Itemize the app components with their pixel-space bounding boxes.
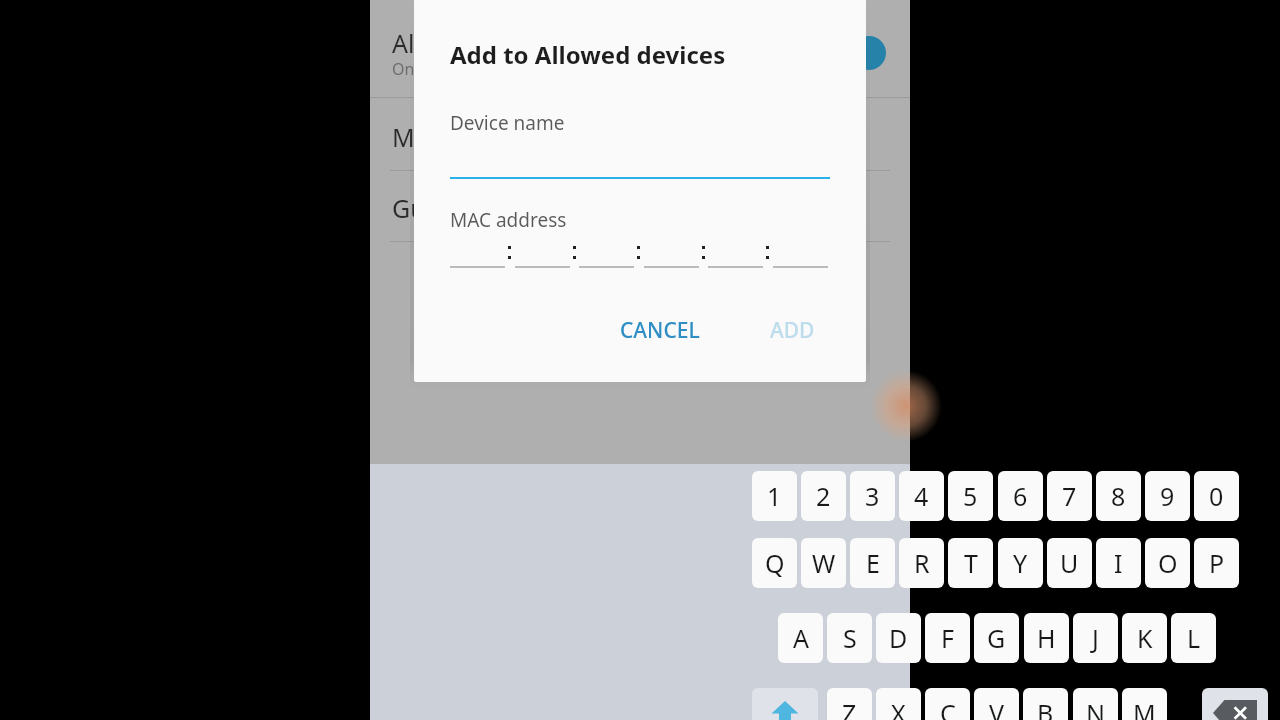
staticText: MAC filter [392,120,508,154]
button[interactable]: Y [998,538,1043,588]
button[interactable]: 4 [899,471,944,521]
staticText: B [1037,696,1054,720]
button[interactable]: Shift [752,688,818,720]
button[interactable]: 2 [801,471,846,521]
button[interactable]: X [876,688,921,720]
button[interactable]: Backspace [1202,688,1268,720]
staticText: A [793,621,809,655]
button[interactable]: O [1145,538,1190,588]
button[interactable]: 5 [948,471,993,521]
button[interactable]: 1 [752,471,797,521]
button[interactable]: H [1024,613,1069,663]
staticText: D [889,621,908,655]
staticText: 0 [1209,479,1224,513]
button[interactable]: 6 [998,471,1043,521]
button[interactable]: Q [752,538,797,588]
staticText: CANCEL [620,316,700,345]
staticText: Q [765,546,785,580]
button[interactable]: ADD [754,302,831,358]
staticText: 1 [767,479,782,513]
button[interactable]: MAC filter [370,98,910,170]
staticText: F [941,621,954,655]
staticText: U [1060,546,1079,580]
staticText: Add to Allowed devices [450,38,726,71]
button[interactable]: Toggle allowed devices [852,36,886,70]
staticText: P [1209,546,1225,580]
staticText: Allowed devices [392,26,578,60]
button[interactable]: G [974,613,1019,663]
staticText: 2 [816,479,831,513]
staticText: 6 [1013,479,1028,513]
button[interactable]: N [1073,688,1118,720]
button[interactable]: 7 [1047,471,1092,521]
staticText: N [1086,696,1106,720]
staticText: G [987,621,1006,655]
button[interactable]: U [1047,538,1092,588]
staticText: E [866,546,880,580]
button[interactable]: E [850,538,895,588]
staticText: ADD [770,316,815,345]
staticText: T [964,546,978,580]
button[interactable]: M [1122,688,1167,720]
button[interactable]: 8 [1096,471,1141,521]
staticText: MAC address [450,207,567,233]
staticText: I [1114,546,1123,580]
button[interactable]: I [1096,538,1141,588]
button[interactable]: W [801,538,846,588]
staticText: R [914,546,930,580]
button[interactable]: A [778,613,823,663]
button[interactable]: L [1171,613,1216,663]
button[interactable]: CANCEL [604,302,716,358]
staticText: L [1187,621,1201,655]
staticText: Only allow [392,58,471,80]
button[interactable]: 3 [850,471,895,521]
button[interactable]: Allowed devices [370,0,910,97]
button[interactable]: S [827,613,872,663]
button[interactable]: 9 [1145,471,1190,521]
button[interactable]: F [925,613,970,663]
button[interactable]: K [1122,613,1167,663]
staticText: Guest network [392,191,565,225]
staticText: V [989,696,1005,720]
button[interactable]: T [948,538,993,588]
staticText: 3 [865,479,880,513]
staticText: 8 [1111,479,1126,513]
staticText: Z [842,696,857,720]
button[interactable]: R [899,538,944,588]
staticText: 7 [1062,479,1077,513]
button[interactable]: D [876,613,921,663]
staticText: J [1092,621,1099,655]
button[interactable]: C [925,688,970,720]
staticText: W [812,546,836,580]
button[interactable]: P [1194,538,1239,588]
button[interactable]: V [974,688,1019,720]
staticText: Y [1013,546,1028,580]
staticText: 9 [1160,479,1175,513]
staticText: H [1037,621,1056,655]
button[interactable]: Z [827,688,872,720]
button[interactable]: J [1073,613,1118,663]
staticText: S [843,621,857,655]
button[interactable]: B [1023,688,1068,720]
button[interactable]: 0 [1194,471,1239,521]
staticText: X [891,696,906,720]
staticText: 5 [963,479,978,513]
staticText: C [940,696,956,720]
staticText: O [1158,546,1178,580]
staticText: 4 [914,479,929,513]
staticText: Device name [450,110,565,136]
button[interactable]: Guest network [370,171,910,241]
staticText: K [1137,621,1153,655]
staticText: M [1133,696,1156,720]
